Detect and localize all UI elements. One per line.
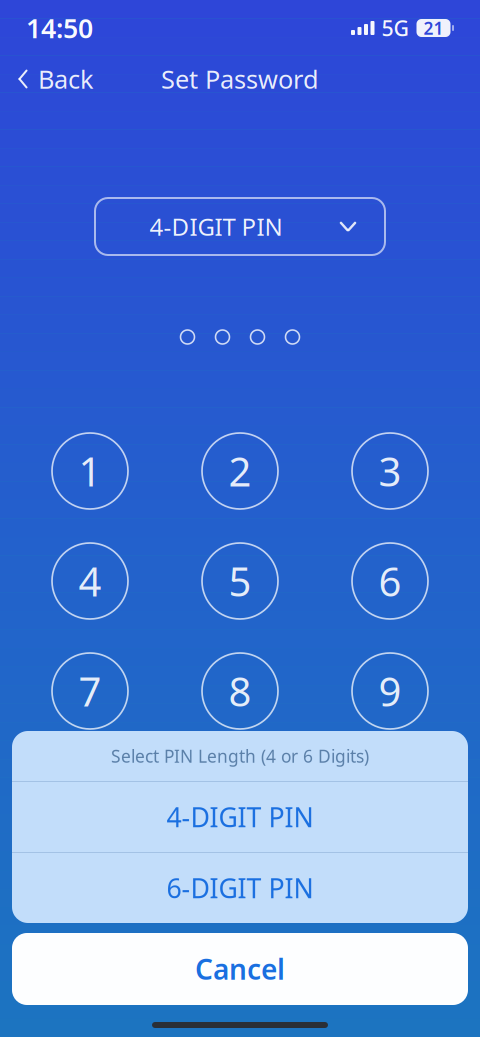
staticText: 4 bbox=[78, 554, 101, 607]
button[interactable]: 5 bbox=[202, 543, 278, 619]
staticText: 14:50 bbox=[26, 10, 93, 46]
button[interactable]: 6 bbox=[352, 543, 428, 619]
button[interactable]: Cancel bbox=[12, 933, 468, 1005]
button[interactable]: 7 bbox=[52, 653, 128, 729]
button[interactable]: 4 bbox=[52, 543, 128, 619]
staticText: 21 bbox=[423, 16, 443, 39]
staticText: Cancel bbox=[195, 950, 285, 988]
staticText: 9 bbox=[378, 664, 401, 717]
staticText: 7 bbox=[78, 664, 101, 717]
button[interactable]: 6-DIGIT PIN bbox=[12, 853, 468, 923]
staticText: 5 bbox=[228, 554, 251, 607]
staticText: 2 bbox=[228, 444, 251, 497]
staticText: 6 bbox=[378, 554, 401, 607]
staticText: 1 bbox=[78, 444, 101, 497]
staticText: Select PIN Length (4 or 6 Digits) bbox=[111, 744, 369, 767]
staticText: Back bbox=[38, 62, 94, 96]
staticText: 4-DIGIT PIN bbox=[166, 799, 313, 835]
staticText: Set Password bbox=[161, 62, 319, 96]
button[interactable]: 2 bbox=[202, 433, 278, 509]
button[interactable]: 1 bbox=[52, 433, 128, 509]
button[interactable]: 4-DIGIT PIN bbox=[95, 198, 385, 255]
button[interactable]: 3 bbox=[352, 433, 428, 509]
button[interactable]: 4-DIGIT PIN bbox=[12, 782, 468, 852]
staticText: 3 bbox=[378, 444, 401, 497]
staticText: 5G bbox=[381, 14, 409, 42]
staticText: 4-DIGIT PIN bbox=[149, 211, 282, 242]
staticText: 6-DIGIT PIN bbox=[166, 870, 313, 906]
button[interactable]: Back bbox=[4, 56, 106, 102]
button[interactable]: 8 bbox=[202, 653, 278, 729]
button[interactable]: 9 bbox=[352, 653, 428, 729]
staticText: 8 bbox=[228, 664, 251, 717]
